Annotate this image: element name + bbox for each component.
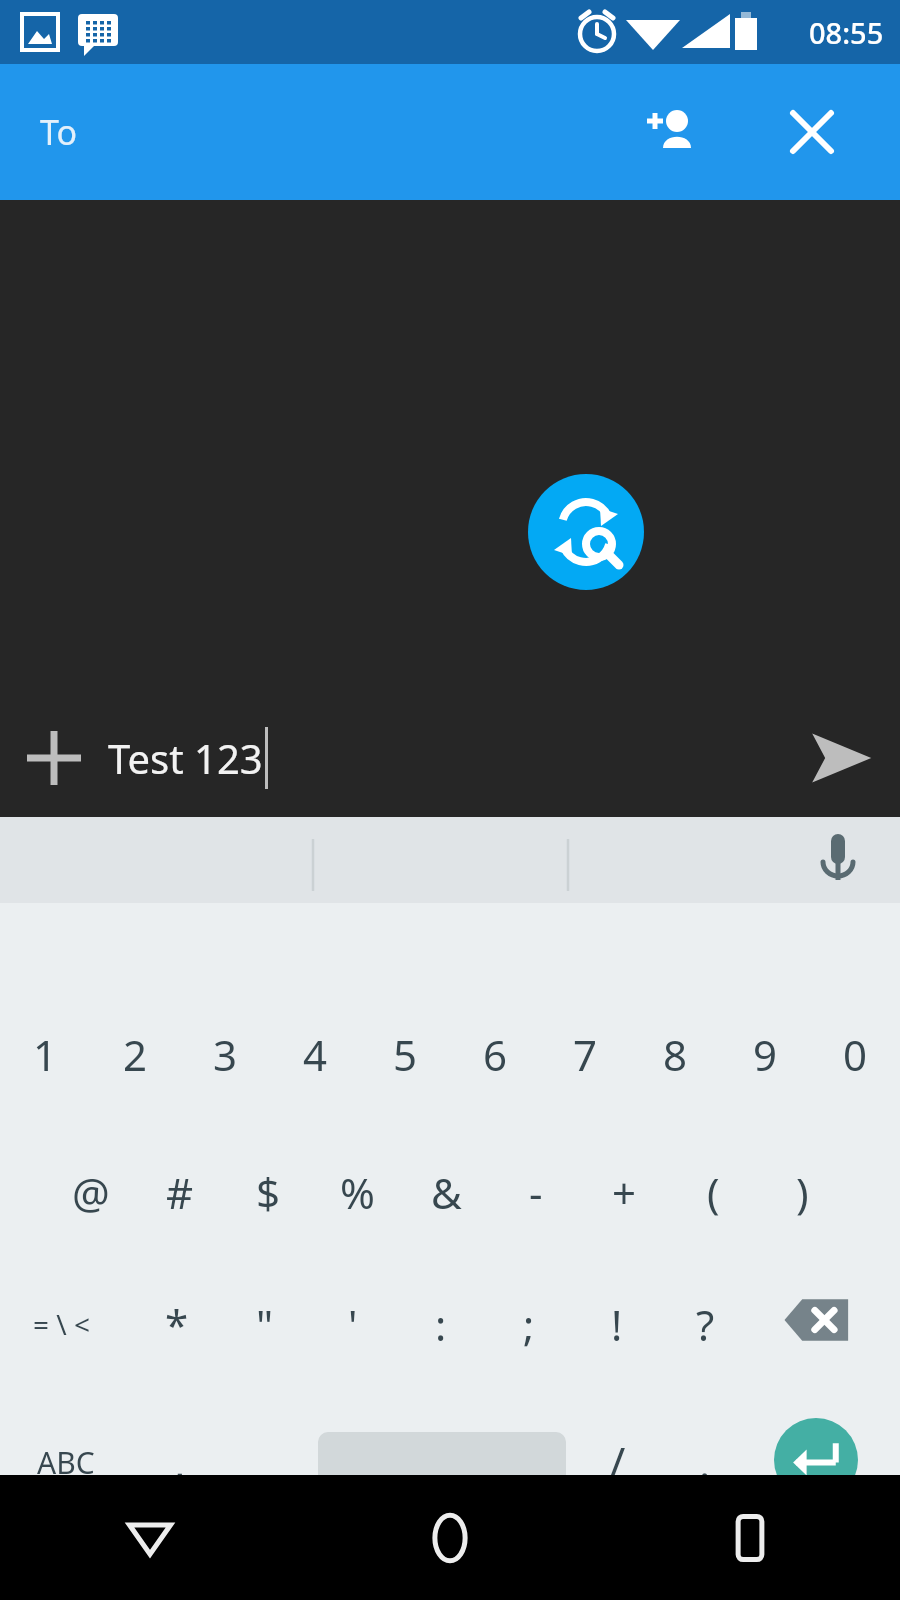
button[interactable]: ! (573, 1276, 661, 1372)
button[interactable]: ABC (18, 1412, 114, 1512)
button[interactable]: 4 (270, 1006, 360, 1102)
staticText: 6 (483, 1026, 508, 1083)
button[interactable]: Add recipient (626, 88, 714, 176)
staticText: ; (523, 1296, 535, 1353)
staticText: 7 (573, 1026, 598, 1083)
staticText: ! (611, 1296, 623, 1353)
button[interactable]: ' (309, 1276, 397, 1372)
button[interactable]: , (136, 1412, 224, 1512)
staticText: & (431, 1164, 462, 1221)
button[interactable]: * (133, 1276, 221, 1372)
button[interactable]: 0 (810, 1006, 900, 1102)
button[interactable]: / (576, 1412, 658, 1512)
staticText: 4 (303, 1026, 328, 1083)
button[interactable]: 2 (90, 1006, 180, 1102)
button[interactable]: 7 (540, 1006, 630, 1102)
button[interactable]: " (221, 1276, 309, 1372)
staticText: 0 (843, 1026, 868, 1083)
button[interactable]: Recent apps (600, 1475, 900, 1600)
button[interactable]: Home (300, 1475, 600, 1600)
button[interactable]: 6 (450, 1006, 540, 1102)
staticText: ABC (37, 1442, 95, 1483)
staticText: 2 (123, 1026, 148, 1083)
button[interactable]: ; (485, 1276, 573, 1372)
button[interactable]: ? (661, 1276, 749, 1372)
button[interactable]: @ (46, 1144, 135, 1240)
staticText: * (165, 1296, 189, 1353)
staticText: ? (696, 1296, 715, 1353)
staticText: 08:55 (809, 13, 884, 52)
staticText: + (612, 1164, 637, 1221)
button[interactable]: 1 (0, 1006, 90, 1102)
button[interactable]: % (313, 1144, 402, 1240)
staticText: - (529, 1164, 543, 1221)
button[interactable]: Search contacts (528, 474, 644, 590)
staticText: % (340, 1164, 375, 1221)
staticText: : (435, 1296, 447, 1353)
staticText: $ (256, 1164, 281, 1221)
button[interactable]: ) (758, 1144, 847, 1240)
staticText: Test 123 (108, 731, 263, 785)
button[interactable]: 9 (720, 1006, 810, 1102)
staticText: 3 (213, 1026, 238, 1083)
button[interactable]: 3 (180, 1006, 270, 1102)
staticText: 1 (33, 1026, 58, 1083)
staticText: # (166, 1164, 194, 1221)
staticText: " (256, 1296, 274, 1353)
staticText: ( (707, 1164, 720, 1221)
staticText: To (40, 109, 78, 155)
staticText: 8 (663, 1026, 688, 1083)
button[interactable]: : (397, 1276, 485, 1372)
staticText: , (174, 1434, 186, 1491)
button[interactable]: Enter (774, 1418, 858, 1502)
button[interactable]: 8 (630, 1006, 720, 1102)
staticText: _ (259, 1434, 278, 1491)
staticText: . (699, 1434, 711, 1491)
staticText: = \ < (33, 1305, 91, 1343)
staticText: / (609, 1432, 626, 1492)
button[interactable]: = \ < (18, 1276, 106, 1372)
staticText: ) (796, 1164, 809, 1221)
button[interactable]: & (402, 1144, 491, 1240)
staticText: 5 (393, 1026, 418, 1083)
button[interactable]: Space (318, 1432, 566, 1490)
button[interactable]: $ (224, 1144, 313, 1240)
button[interactable]: Add attachment (0, 704, 108, 812)
button[interactable]: _ (224, 1412, 312, 1512)
button[interactable]: Back (0, 1475, 300, 1600)
button[interactable]: ( (669, 1144, 758, 1240)
button[interactable]: + (580, 1144, 669, 1240)
button[interactable]: Voice input (798, 820, 878, 900)
button[interactable]: - (491, 1144, 580, 1240)
staticText: ' (348, 1296, 358, 1353)
button[interactable]: 5 (360, 1006, 450, 1102)
button[interactable]: Send (782, 699, 900, 817)
button[interactable]: # (135, 1144, 224, 1240)
button[interactable]: Close (768, 88, 856, 176)
staticText: 9 (753, 1026, 778, 1083)
staticText: @ (72, 1164, 110, 1221)
button[interactable]: Backspace (776, 1276, 864, 1364)
button[interactable]: . (664, 1412, 746, 1512)
